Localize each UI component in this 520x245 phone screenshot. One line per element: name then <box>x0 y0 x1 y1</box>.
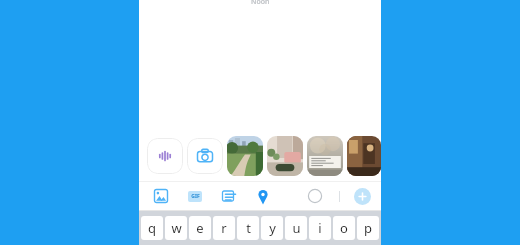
button[interactable]: GIF <box>185 186 205 206</box>
button[interactable]: Photo <box>227 136 263 176</box>
button[interactable]: y <box>261 216 283 240</box>
button[interactable]: Photo <box>267 136 303 176</box>
button[interactable]: Capture <box>305 186 325 206</box>
button[interactable]: Stickers <box>219 186 239 206</box>
button[interactable]: Add <box>354 188 371 205</box>
staticText: r <box>221 219 227 237</box>
button[interactable]: t <box>237 216 259 240</box>
button[interactable]: i <box>309 216 331 240</box>
button[interactable]: Photo <box>347 136 381 176</box>
staticText: i <box>318 219 322 237</box>
staticText: o <box>340 219 348 237</box>
button[interactable]: q <box>141 216 163 240</box>
button[interactable]: e <box>189 216 211 240</box>
button[interactable]: Location <box>253 186 273 206</box>
staticText: u <box>292 219 301 237</box>
button[interactable]: Photo <box>307 136 343 176</box>
staticText: w <box>171 219 182 237</box>
button[interactable]: r <box>213 216 235 240</box>
staticText: e <box>196 219 204 237</box>
button[interactable]: w <box>165 216 187 240</box>
button[interactable]: p <box>357 216 379 240</box>
staticText: y <box>269 219 276 237</box>
staticText: q <box>148 219 156 237</box>
staticText: GIF <box>191 193 200 200</box>
button[interactable]: o <box>333 216 355 240</box>
button[interactable]: u <box>285 216 307 240</box>
staticText: t <box>246 219 251 237</box>
button[interactable]: Record audio <box>147 138 183 174</box>
staticText: p <box>364 219 372 237</box>
staticText: Noon <box>251 0 270 7</box>
button[interactable]: Gallery <box>151 186 171 206</box>
button[interactable]: Camera <box>187 138 223 174</box>
